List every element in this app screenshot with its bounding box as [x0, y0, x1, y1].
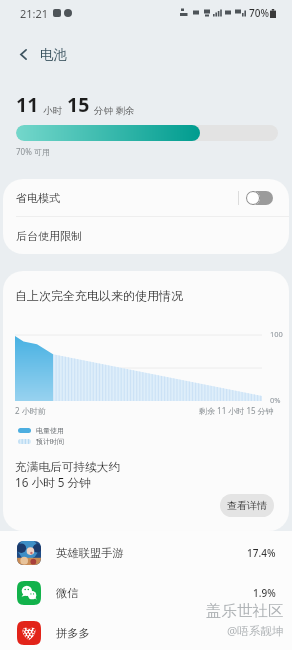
button[interactable]: 后台使用限制 [3, 217, 289, 254]
staticText: 100 [270, 329, 283, 339]
staticText: 70% 可用 [16, 146, 50, 157]
button[interactable]: 英雄联盟手游 [0, 533, 292, 573]
staticText: 查看详情 [227, 499, 267, 512]
staticText: 预计时间 [36, 437, 64, 446]
staticText: 英雄联盟手游 [56, 546, 124, 560]
staticText: 省电模式 [16, 191, 60, 205]
staticText: 微信 [56, 586, 79, 600]
staticText: 1.9% [253, 586, 276, 600]
staticText: 21:21 [20, 6, 49, 21]
button[interactable]: Power saving mode toggle [246, 191, 273, 205]
button[interactable]: 省电模式 [3, 179, 289, 216]
staticText: 16 小时 5 分钟 [15, 474, 91, 490]
staticText: 2 小时前 [15, 405, 46, 416]
staticText: 0% [270, 395, 281, 405]
staticText: 拼多多 [56, 626, 90, 640]
staticText: 电量使用 [36, 426, 64, 435]
staticText: 盖乐世社区 [206, 601, 284, 621]
staticText: @唔系靓坤 [227, 623, 284, 639]
button[interactable]: 查看详情 [220, 494, 274, 517]
staticText: 剩余 11 小时 15 分钟 [199, 405, 274, 416]
button[interactable]: Back [10, 41, 36, 67]
staticText: 分钟 剩余 [94, 104, 135, 117]
button[interactable]: 微信 [0, 573, 292, 613]
staticText: 17.4% [247, 546, 276, 560]
staticText: 电池 [40, 46, 67, 63]
staticText: 15 [67, 91, 90, 118]
button[interactable]: 拼多多 [0, 613, 292, 650]
staticText: 自上次完全充电以来的使用情况 [15, 288, 183, 303]
staticText: 70% [249, 6, 269, 20]
staticText: 11 [16, 91, 39, 118]
staticText: 充满电后可持续大约 [15, 460, 121, 475]
staticText: 小时 [43, 105, 62, 117]
staticText: 后台使用限制 [16, 229, 82, 243]
